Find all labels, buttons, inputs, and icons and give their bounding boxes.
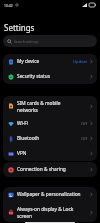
button[interactable]: Security status — [3, 69, 97, 84]
staticText: Connection & sharing — [17, 166, 84, 173]
staticText: Bluetooth — [17, 135, 75, 142]
button[interactable]: Bluetooth — [3, 131, 97, 146]
staticText: 10:42 — [4, 3, 13, 8]
staticText: Search settings — [14, 39, 39, 44]
button[interactable]: Wi-Fi — [3, 116, 97, 131]
button[interactable]: Wallpaper & personalization — [3, 187, 97, 202]
staticText: Security status — [17, 73, 84, 80]
staticText: Wi-Fi — [17, 120, 75, 127]
staticText: Off — [81, 121, 88, 127]
button[interactable]: My device — [3, 54, 97, 69]
staticText: VPN — [17, 150, 84, 157]
staticText: My device — [17, 58, 67, 65]
button[interactable]: SIM cards & mobile networks — [3, 96, 97, 116]
staticText: Off — [81, 136, 88, 142]
staticText: Update — [73, 59, 88, 65]
staticText: SIM cards & mobile networks — [17, 100, 84, 113]
button[interactable]: Connection & sharing — [3, 162, 97, 177]
staticText: Wallpaper & personalization — [17, 191, 84, 198]
button[interactable]: VPN — [3, 146, 97, 161]
button[interactable]: Always-on display & Lock screen — [3, 202, 97, 222]
button[interactable]: Search settings — [3, 35, 97, 47]
staticText: Always-on display & Lock screen — [17, 206, 84, 219]
staticText: Settings — [4, 22, 35, 33]
